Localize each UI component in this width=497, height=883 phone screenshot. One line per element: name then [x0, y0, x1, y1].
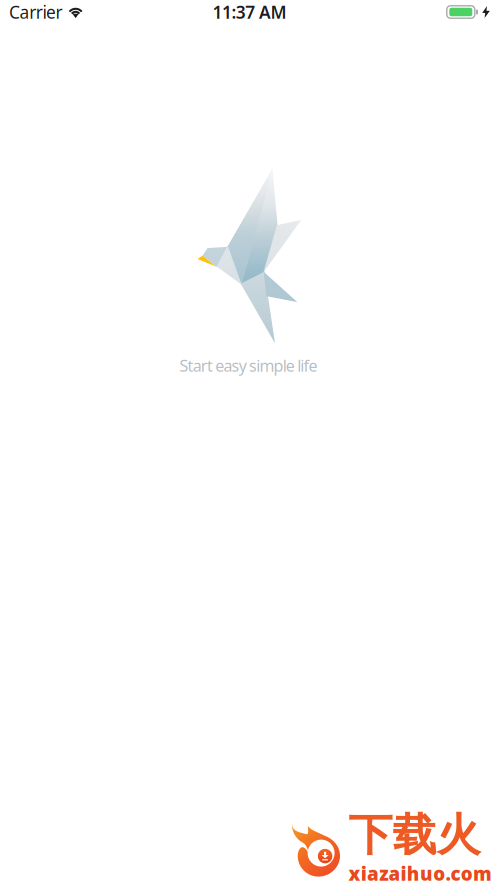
- staticText: 11:37 AM: [213, 0, 286, 23]
- staticText: 下载火: [349, 808, 481, 862]
- staticText: Start easy simple life: [179, 355, 318, 376]
- staticText: xiazaihuo.com: [349, 861, 492, 883]
- staticText: Carrier: [9, 0, 63, 23]
